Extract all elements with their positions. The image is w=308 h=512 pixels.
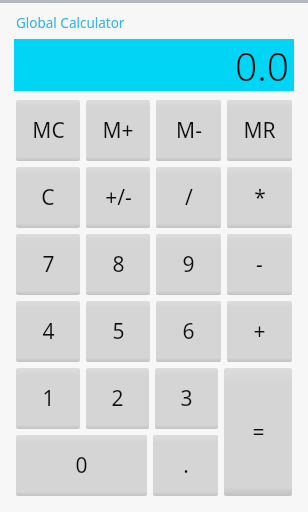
staticText: C	[41, 183, 55, 212]
staticText: 1	[42, 384, 55, 413]
button[interactable]: /	[156, 167, 221, 228]
button[interactable]: =	[224, 368, 292, 496]
staticText: 2	[111, 384, 124, 413]
button[interactable]: MR	[227, 100, 292, 161]
staticText: +	[253, 317, 266, 346]
staticText: /	[185, 183, 193, 212]
staticText: M+	[102, 116, 134, 145]
staticText: 0.0	[235, 39, 290, 91]
button[interactable]: M-	[156, 100, 221, 161]
button[interactable]: .	[153, 435, 218, 496]
staticText: 6	[182, 317, 195, 346]
staticText: *	[254, 183, 266, 212]
staticText: 0	[75, 451, 88, 480]
button[interactable]: 6	[156, 301, 221, 362]
staticText: 9	[182, 250, 195, 279]
button[interactable]: M+	[86, 100, 150, 161]
button[interactable]: 1	[16, 368, 80, 429]
staticText: -	[256, 250, 263, 279]
staticText: M-	[176, 116, 202, 145]
button[interactable]: +	[227, 301, 292, 362]
staticText: MR	[243, 116, 276, 145]
staticText: 7	[42, 250, 55, 279]
staticText: 3	[180, 384, 193, 413]
staticText: 4	[42, 317, 55, 346]
button[interactable]: 4	[16, 301, 80, 362]
button[interactable]: +/-	[86, 167, 150, 228]
staticText: Global Calculator	[16, 14, 125, 32]
staticText: MC	[32, 116, 65, 145]
staticText: .	[183, 451, 189, 480]
button[interactable]: 5	[86, 301, 150, 362]
button[interactable]: 8	[86, 234, 150, 295]
button[interactable]: 9	[156, 234, 221, 295]
button[interactable]: 3	[155, 368, 218, 429]
staticText: +/-	[105, 183, 132, 212]
button[interactable]: *	[227, 167, 292, 228]
staticText: 5	[112, 317, 125, 346]
button[interactable]: MC	[16, 100, 80, 161]
button[interactable]: 2	[86, 368, 149, 429]
button[interactable]: C	[16, 167, 80, 228]
button[interactable]: -	[227, 234, 292, 295]
staticText: 8	[112, 250, 125, 279]
button[interactable]: 7	[16, 234, 80, 295]
button[interactable]: Calculator display	[14, 39, 294, 91]
staticText: =	[252, 418, 265, 447]
button[interactable]: 0	[16, 435, 147, 496]
